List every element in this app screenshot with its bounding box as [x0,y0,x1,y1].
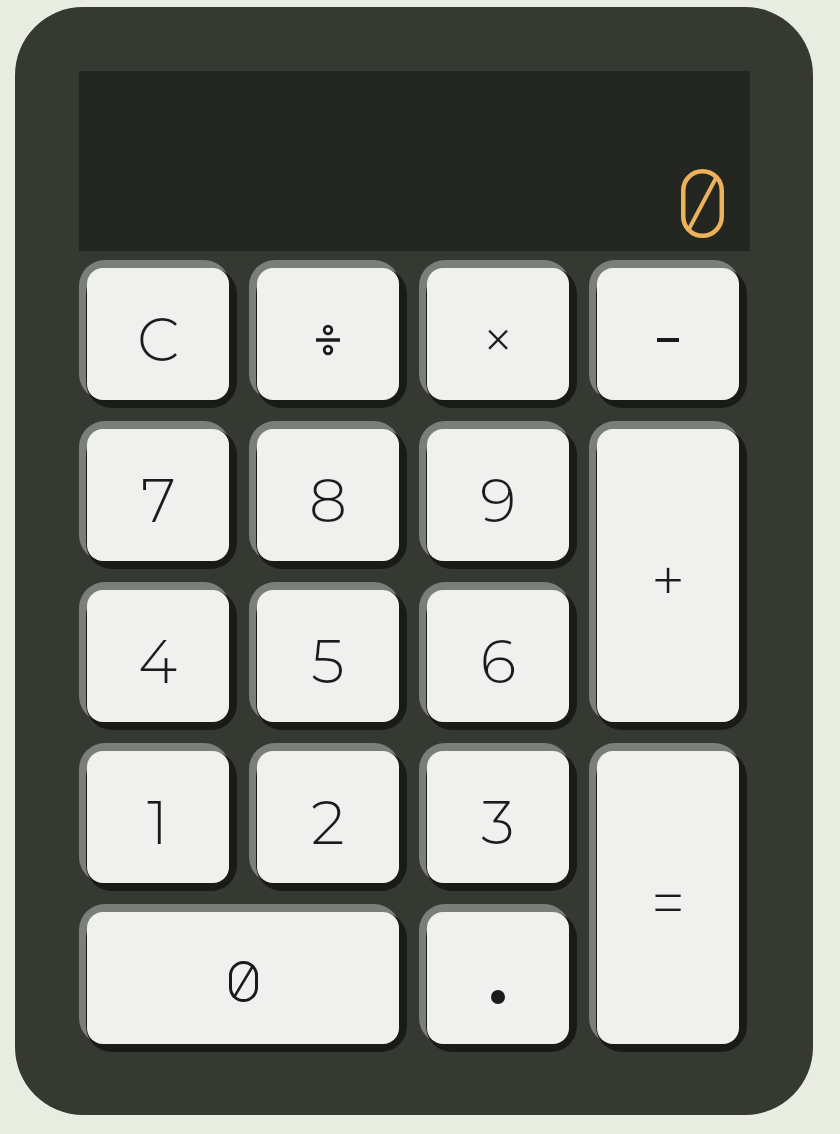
staticText: 8 [309,464,347,537]
staticText: 9 [480,464,517,537]
button[interactable] [589,260,747,408]
staticText: 2 [311,786,345,859]
button[interactable]: 1 [79,743,237,891]
button[interactable]: 2 [249,743,407,891]
staticText: 1 [147,786,169,859]
button[interactable] [419,904,577,1052]
staticText: 5 [311,625,345,698]
staticText: + [651,544,686,617]
staticText: 7 [141,464,176,537]
button[interactable]: 8 [249,421,407,569]
button[interactable]: 4 [79,582,237,730]
staticText: 4 [138,625,178,698]
staticText: × [481,303,516,376]
button[interactable] [249,260,407,408]
button[interactable]: = [589,743,747,1052]
staticText: = [651,866,686,939]
button[interactable]: 3 [419,743,577,891]
button[interactable]: × [419,260,577,408]
button[interactable]: 9 [419,421,577,569]
staticText: 3 [481,786,515,859]
button[interactable]: 7 [79,421,237,569]
button[interactable]: + [589,421,747,730]
button[interactable] [79,904,407,1052]
button[interactable]: 6 [419,582,577,730]
staticText: C [137,303,180,376]
staticText: 6 [480,625,517,698]
button[interactable]: C [79,260,237,408]
button[interactable]: 5 [249,582,407,730]
